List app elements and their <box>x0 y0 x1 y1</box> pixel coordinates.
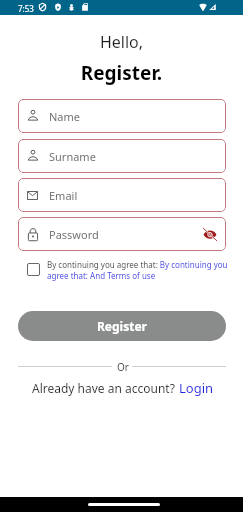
staticText: By continuing you agree that: By continu… <box>47 259 230 281</box>
staticText: Surname <box>49 149 96 164</box>
staticText: Password <box>49 227 99 242</box>
staticText: Or <box>117 360 129 374</box>
button[interactable]: Show password <box>202 227 218 241</box>
button[interactable]: Register <box>18 311 226 341</box>
button[interactable]: Password <box>18 217 226 251</box>
staticText: Register. <box>0 60 243 86</box>
staticText: Register <box>97 318 147 334</box>
button[interactable]: Name <box>18 99 226 133</box>
button[interactable]: Email <box>18 178 226 212</box>
button[interactable]: By continuing you agree that: By continu… <box>18 256 226 282</box>
staticText: Hello, <box>0 31 243 53</box>
staticText: 7:53 <box>18 3 34 14</box>
button[interactable]: Login <box>179 379 214 397</box>
button[interactable]: Surname <box>18 139 226 173</box>
staticText: Email <box>49 188 78 203</box>
staticText: Already have an account? <box>32 380 179 396</box>
staticText: Login <box>179 379 214 397</box>
staticText: Name <box>49 109 81 124</box>
